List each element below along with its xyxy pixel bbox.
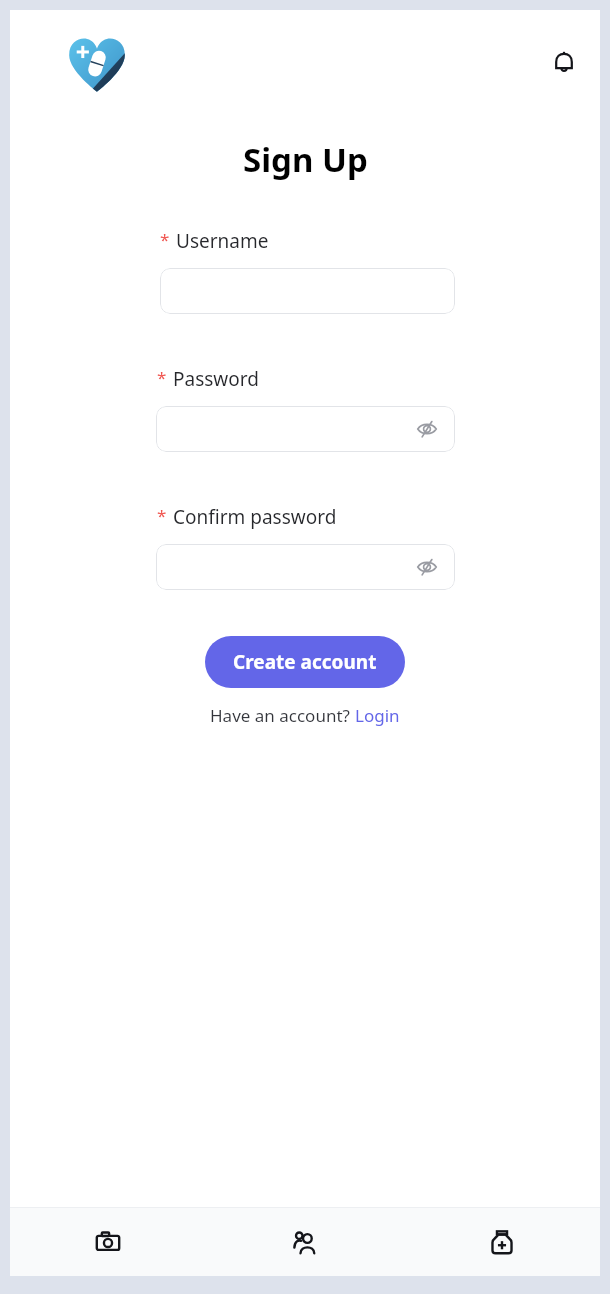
staticText: * xyxy=(157,504,167,527)
button[interactable]: Confirm password input xyxy=(156,544,455,590)
button[interactable]: Username input xyxy=(160,268,455,314)
staticText: Confirm password xyxy=(173,504,337,530)
button[interactable]: Create account xyxy=(205,636,405,688)
button[interactable]: Show password xyxy=(415,417,439,441)
staticText: * xyxy=(160,228,170,251)
staticText: * xyxy=(157,366,167,389)
button[interactable]: Password input xyxy=(156,406,455,452)
button[interactable]: Notifications xyxy=(542,41,586,85)
button[interactable]: Medicine xyxy=(403,1208,600,1276)
staticText: Password xyxy=(173,366,259,392)
staticText: Login xyxy=(355,704,400,727)
staticText: Sign Up xyxy=(243,137,368,182)
button[interactable]: Show password xyxy=(415,555,439,579)
staticText: Have an account? xyxy=(210,704,355,727)
button[interactable]: Contacts xyxy=(206,1208,403,1276)
button[interactable]: Login xyxy=(355,704,400,727)
button[interactable]: Camera xyxy=(10,1208,206,1276)
staticText: Create account xyxy=(233,649,377,675)
staticText: Username xyxy=(176,228,269,254)
button[interactable]: App logo xyxy=(68,36,126,94)
